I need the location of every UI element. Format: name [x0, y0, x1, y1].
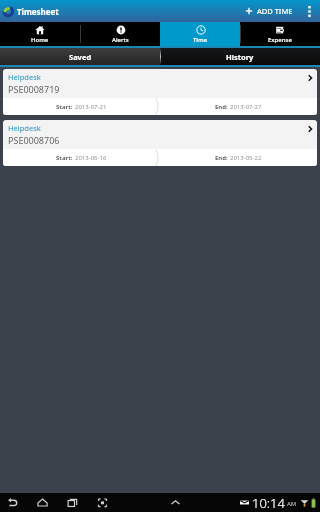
staticText: Helpdesk: [8, 72, 41, 82]
staticText: Home: [31, 36, 49, 44]
button[interactable]: More options: [298, 0, 320, 22]
button[interactable]: History: [160, 48, 320, 65]
staticText: Timesheet: [17, 6, 59, 17]
button[interactable]: Helpdesk: [3, 69, 317, 115]
button[interactable]: Home: [32, 493, 52, 512]
staticText: 2013-05-22: [230, 154, 262, 162]
button[interactable]: Helpdesk: [3, 120, 317, 166]
staticText: End:: [215, 103, 230, 111]
staticText: 2013-06-16: [75, 154, 107, 162]
staticText: ADD TIME: [257, 6, 293, 16]
button[interactable]: Expense: [240, 22, 320, 46]
button[interactable]: ADD TIME: [240, 0, 298, 22]
staticText: AM: [287, 500, 297, 508]
button[interactable]: Back: [2, 493, 22, 512]
button[interactable]: Home: [0, 22, 80, 46]
staticText: History: [226, 52, 254, 62]
staticText: 2013-07-27: [230, 103, 262, 111]
staticText: PSE0008719: [8, 83, 60, 95]
staticText: PSE0008706: [8, 134, 60, 146]
staticText: 2013-07-21: [75, 103, 107, 111]
button[interactable]: Saved: [0, 48, 160, 65]
staticText: Expense: [268, 36, 292, 44]
staticText: Start:: [56, 154, 75, 162]
button[interactable]: Screenshot: [92, 493, 112, 512]
staticText: 10:14: [252, 494, 285, 512]
button[interactable]: Recent apps: [62, 493, 82, 512]
staticText: Helpdesk: [8, 123, 41, 133]
staticText: Start:: [56, 103, 75, 111]
button[interactable]: Show keyboard: [165, 493, 185, 512]
button[interactable]: Time: [160, 22, 240, 46]
staticText: End:: [215, 154, 230, 162]
staticText: Saved: [69, 52, 92, 62]
button[interactable]: Alerts: [80, 22, 160, 46]
staticText: Time: [193, 36, 208, 44]
staticText: Alerts: [112, 36, 129, 44]
